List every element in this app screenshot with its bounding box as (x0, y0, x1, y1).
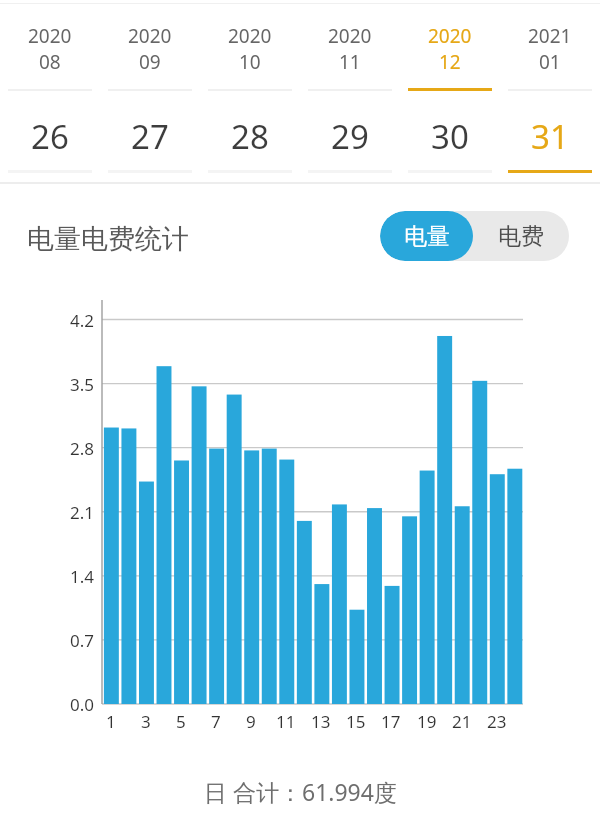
staticText: 21 (452, 710, 472, 732)
staticText: 电量 (404, 222, 450, 251)
button[interactable]: 2020 (300, 11, 400, 87)
staticText: 2.1 (70, 501, 95, 523)
staticText: 电费 (498, 222, 544, 251)
staticText: 3.5 (70, 373, 95, 395)
staticText: 28 (231, 114, 269, 159)
staticText: 01 (539, 49, 561, 75)
button[interactable]: 2020 (400, 11, 500, 87)
staticText: 2020 (228, 23, 272, 49)
button[interactable]: 2020 (0, 11, 100, 87)
staticText: 3 (141, 710, 151, 732)
staticText: 08 (39, 49, 61, 75)
staticText: 11 (339, 49, 361, 75)
staticText: 0.0 (70, 693, 95, 715)
button[interactable]: 30 (400, 100, 500, 172)
staticText: 2021 (528, 23, 572, 49)
staticText: 1.4 (70, 565, 95, 587)
staticText: 19 (417, 710, 437, 732)
staticText: 5 (176, 710, 186, 732)
staticText: 29 (331, 114, 369, 159)
staticText: 10 (239, 49, 261, 75)
staticText: 15 (346, 710, 366, 732)
staticText: 17 (381, 710, 401, 732)
staticText: 2020 (328, 23, 372, 49)
staticText: 23 (487, 710, 507, 732)
button[interactable]: 31 (500, 100, 600, 172)
staticText: 9 (246, 710, 256, 732)
button[interactable]: 28 (200, 100, 300, 172)
staticText: 26 (31, 114, 69, 159)
staticText: 2020 (28, 23, 72, 49)
button[interactable]: 29 (300, 100, 400, 172)
staticText: 12 (439, 49, 461, 75)
staticText: 31 (531, 114, 569, 159)
staticText: 7 (211, 710, 221, 732)
button[interactable]: 27 (100, 100, 200, 172)
button[interactable]: 2020 (100, 11, 200, 87)
staticText: 2020 (128, 23, 172, 49)
staticText: 电量电费统计 (27, 222, 189, 256)
staticText: 日 合计：61.994度 (204, 776, 397, 806)
staticText: 11 (276, 710, 296, 732)
button[interactable]: 电量 (380, 211, 473, 261)
staticText: 2.8 (70, 437, 95, 459)
staticText: 4.2 (70, 309, 95, 331)
staticText: 27 (131, 114, 169, 159)
button[interactable]: 2021 (500, 11, 600, 87)
staticText: 0.7 (70, 629, 95, 651)
button[interactable]: 2020 (200, 11, 300, 87)
staticText: 30 (431, 114, 469, 159)
button[interactable]: 电费 (473, 211, 569, 261)
staticText: 2020 (428, 23, 472, 49)
staticText: 09 (139, 49, 161, 75)
staticText: 13 (311, 710, 331, 732)
button[interactable]: 26 (0, 100, 100, 172)
staticText: 1 (106, 710, 116, 732)
